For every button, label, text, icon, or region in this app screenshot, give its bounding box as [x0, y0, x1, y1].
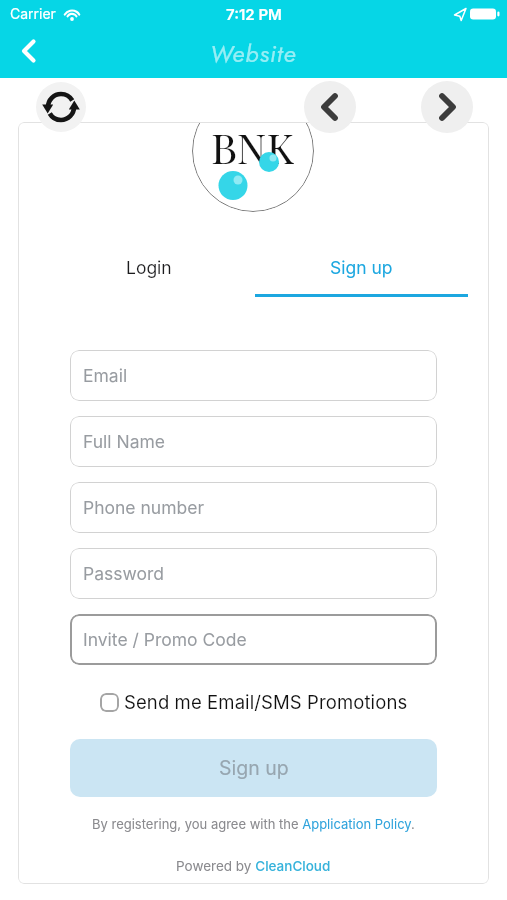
- staticText: Invite / Promo Code: [83, 629, 247, 650]
- staticText: Phone number: [83, 497, 205, 518]
- button[interactable]: [304, 81, 356, 133]
- staticText: Website: [210, 36, 297, 71]
- button[interactable]: Email: [70, 350, 437, 401]
- staticText: Password: [83, 563, 164, 584]
- button[interactable]: Powered by CleanCloud: [18, 856, 489, 876]
- button[interactable]: Full Name: [70, 416, 437, 467]
- staticText: Send me Email/SMS Promotions: [124, 691, 408, 713]
- staticText: Full Name: [83, 431, 166, 452]
- staticText: Sign up: [330, 257, 393, 278]
- staticText: Sign up: [219, 756, 289, 780]
- button[interactable]: [12, 34, 48, 70]
- button[interactable]: Phone number: [70, 482, 437, 533]
- staticText: By registering, you agree with the Appli…: [92, 816, 415, 832]
- staticText: Login: [126, 257, 172, 278]
- button[interactable]: Sign up: [255, 242, 468, 292]
- staticText: Carrier: [10, 5, 56, 22]
- button[interactable]: [421, 81, 473, 133]
- staticText: Email: [83, 365, 128, 386]
- button[interactable]: Invite / Promo Code: [70, 614, 437, 665]
- button[interactable]: By registering, you agree with the Appli…: [18, 814, 489, 834]
- button[interactable]: [36, 82, 86, 132]
- button[interactable]: Password: [70, 548, 437, 599]
- staticText: Powered by CleanCloud: [176, 858, 331, 874]
- staticText: BNK: [211, 122, 295, 175]
- staticText: 7:12 PM: [226, 5, 282, 23]
- button[interactable]: Send me Email/SMS Promotions: [18, 690, 489, 714]
- button[interactable]: Sign up: [70, 739, 437, 797]
- button[interactable]: Login: [42, 242, 255, 292]
